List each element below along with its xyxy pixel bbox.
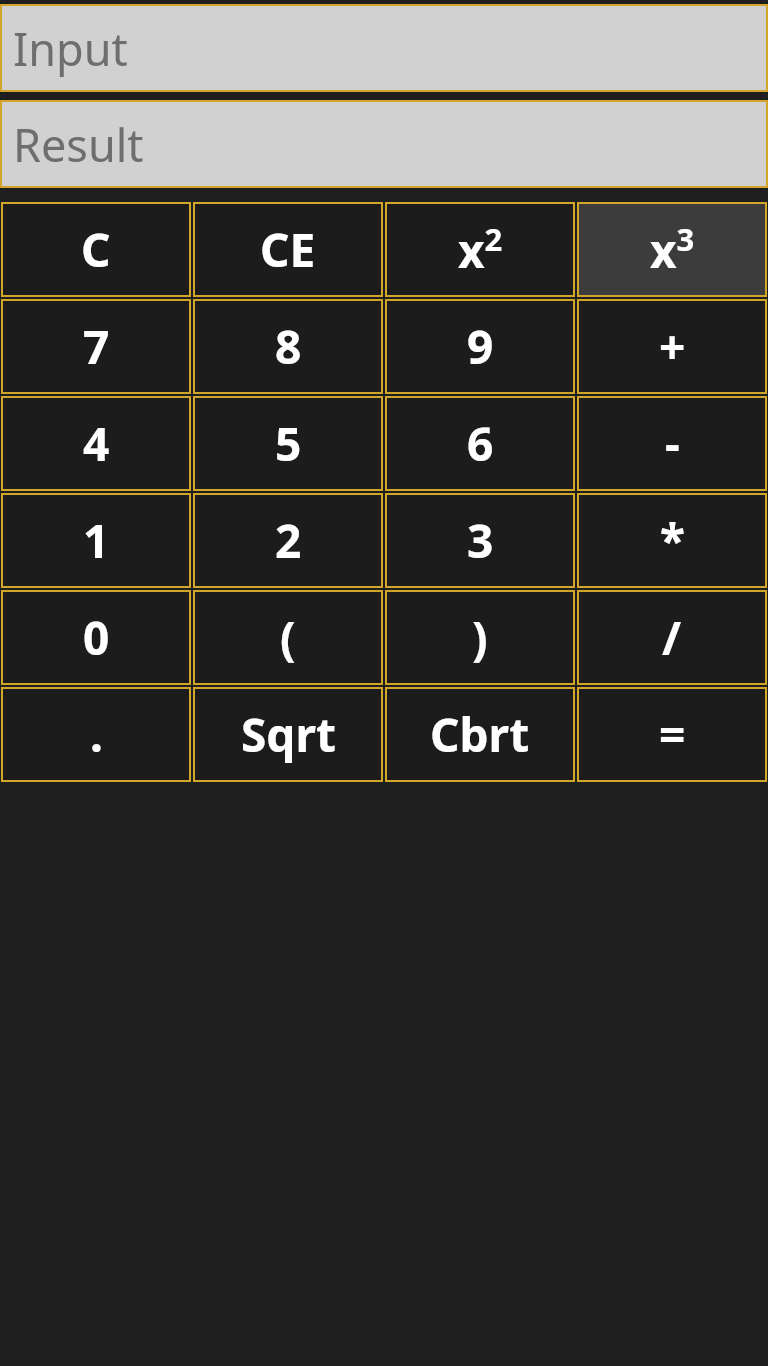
button[interactable]: 4 (3, 398, 189, 489)
staticText: . (90, 703, 103, 766)
button[interactable]: Sqrt (195, 689, 381, 780)
button[interactable]: - (579, 398, 765, 489)
staticText: 3 (467, 509, 494, 572)
button[interactable]: + (579, 301, 765, 392)
button[interactable]: CE (195, 204, 381, 295)
staticText: Result (13, 114, 144, 175)
button[interactable]: 6 (387, 398, 573, 489)
staticText: 6 (467, 412, 494, 475)
button[interactable]: ) (387, 592, 573, 683)
button[interactable]: = (579, 689, 765, 780)
staticText: * (660, 509, 685, 572)
button[interactable]: 5 (195, 398, 381, 489)
button[interactable]: 7 (3, 301, 189, 392)
staticText: CE (260, 218, 316, 281)
button[interactable]: 2 (195, 495, 381, 586)
staticText: Input (13, 18, 128, 79)
staticText: = (659, 703, 686, 766)
button[interactable]: / (579, 592, 765, 683)
staticText: x2 (458, 218, 503, 281)
staticText: 4 (83, 412, 110, 475)
button[interactable]: Input (2, 6, 766, 90)
staticText: 0 (83, 606, 110, 669)
staticText: 7 (83, 315, 110, 378)
staticText: / (662, 606, 682, 669)
button[interactable]: Cbrt (387, 689, 573, 780)
staticText: 8 (275, 315, 302, 378)
staticText: + (659, 315, 686, 378)
staticText: ) (472, 606, 488, 669)
button[interactable]: x3 (579, 204, 765, 295)
button[interactable]: ( (195, 592, 381, 683)
staticText: 5 (275, 412, 302, 475)
button[interactable]: 3 (387, 495, 573, 586)
staticText: 2 (275, 509, 302, 572)
button[interactable]: C (3, 204, 189, 295)
button[interactable]: 8 (195, 301, 381, 392)
button[interactable]: Result (2, 102, 766, 186)
staticText: 9 (467, 315, 494, 378)
button[interactable]: * (579, 495, 765, 586)
staticText: - (665, 412, 680, 475)
button[interactable]: 0 (3, 592, 189, 683)
button[interactable]: . (3, 689, 189, 780)
staticText: Cbrt (430, 703, 530, 766)
button[interactable]: 9 (387, 301, 573, 392)
button[interactable]: 1 (3, 495, 189, 586)
staticText: x3 (650, 218, 695, 281)
staticText: 1 (83, 509, 110, 572)
staticText: C (81, 218, 111, 281)
staticText: ( (280, 606, 296, 669)
button[interactable]: x2 (387, 204, 573, 295)
staticText: Sqrt (241, 703, 336, 766)
